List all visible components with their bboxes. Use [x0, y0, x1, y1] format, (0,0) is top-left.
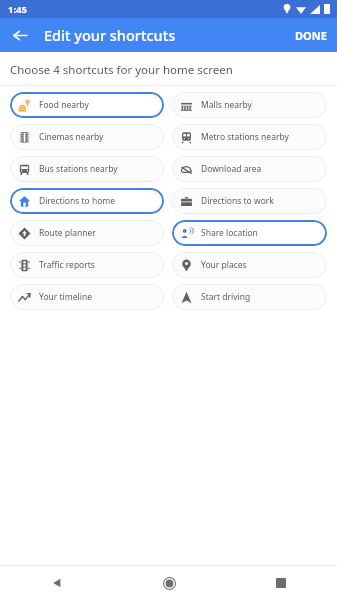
button[interactable]: Your places	[172, 252, 327, 278]
staticText: Directions to work	[201, 195, 274, 207]
button[interactable]: Download area	[172, 156, 327, 182]
staticText: Your timeline	[39, 291, 92, 303]
button[interactable]: DONE	[285, 21, 337, 50]
staticText: Food nearby	[39, 99, 89, 111]
button[interactable]: Metro stations nearby	[172, 124, 327, 150]
button[interactable]: Share location	[172, 220, 327, 246]
button[interactable]: Start driving	[172, 284, 327, 310]
staticText: Choose 4 shortcuts for your home screen	[10, 62, 233, 78]
button[interactable]: Back	[6, 21, 34, 49]
staticText: DONE	[295, 28, 327, 43]
staticText: Malls nearby	[201, 99, 252, 111]
staticText: Start driving	[201, 291, 251, 303]
button[interactable]: Cinemas nearby	[10, 124, 164, 150]
button[interactable]: Bus stations nearby	[10, 156, 164, 182]
button[interactable]: Your timeline	[10, 284, 164, 310]
button[interactable]: Directions to work	[172, 188, 327, 214]
staticText: Your places	[201, 259, 247, 271]
staticText: Cinemas nearby	[39, 131, 104, 143]
staticText: Share location	[201, 227, 258, 239]
button[interactable]: Traffic reports	[10, 252, 164, 278]
staticText: Metro stations nearby	[201, 131, 289, 143]
button[interactable]: Recent apps	[225, 566, 337, 600]
button[interactable]: Home	[113, 566, 225, 600]
button[interactable]: Malls nearby	[172, 92, 327, 118]
staticText: Download area	[201, 163, 262, 175]
staticText: Route planner	[39, 227, 96, 239]
staticText: Bus stations nearby	[39, 163, 118, 175]
button[interactable]: Food nearby	[10, 92, 164, 118]
staticText: Directions to home	[39, 195, 116, 207]
staticText: Traffic reports	[39, 259, 95, 271]
button[interactable]: Back	[0, 566, 113, 600]
staticText: Edit your shortcuts	[44, 25, 176, 45]
staticText: 1:45	[8, 3, 27, 16]
button[interactable]: Route planner	[10, 220, 164, 246]
button[interactable]: Directions to home	[10, 188, 164, 214]
